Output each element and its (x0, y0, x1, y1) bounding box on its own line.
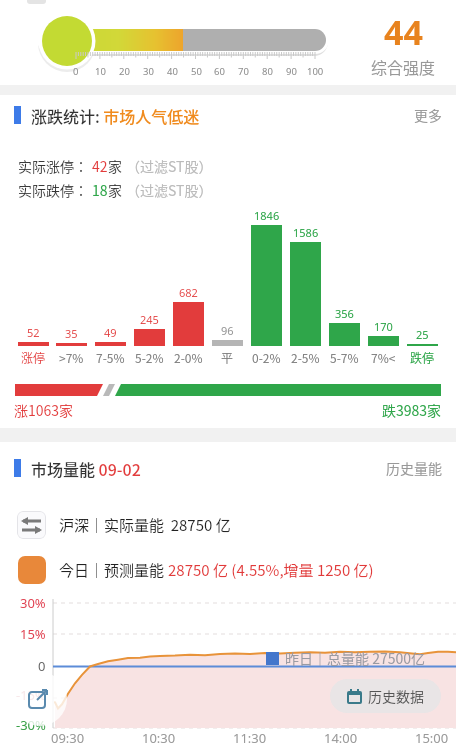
button[interactable]: 今日｜预测量能 (18, 556, 374, 584)
staticText: 10 (95, 65, 106, 78)
staticText: 2-5% (291, 349, 320, 366)
staticText: 实际涨停： (18, 156, 92, 176)
staticText: （过滤ST股） (126, 180, 213, 200)
staticText: 历史量能 (386, 458, 442, 478)
staticText: 18 (92, 180, 108, 200)
button[interactable] (13, 672, 67, 726)
staticText: 14:00 (324, 729, 358, 747)
staticText: 40 (167, 65, 178, 78)
staticText: 家 (108, 180, 126, 200)
staticText: 0 (73, 65, 79, 78)
button[interactable]: 历史数据 (330, 679, 441, 713)
staticText: 15:00 (415, 729, 449, 747)
staticText: 25 (416, 327, 429, 342)
staticText: 44 (384, 9, 423, 55)
staticText: 平 (221, 349, 234, 366)
staticText: 80 (262, 65, 273, 78)
staticText: 682 (179, 285, 198, 300)
staticText: 跌3983家 (382, 400, 442, 420)
staticText: 0-2% (252, 349, 281, 366)
staticText: 1586 (293, 225, 319, 240)
staticText: 涨1063家 (14, 400, 74, 420)
staticText: 42 (92, 156, 108, 176)
staticText: 5-2% (135, 349, 164, 366)
staticText: 市场量能 09-02 (31, 457, 141, 480)
staticText: 11:30 (233, 729, 267, 747)
button[interactable]: 更多 (414, 105, 442, 125)
staticText: 28750 亿 (4.55%,增量 1250 亿) (168, 559, 374, 581)
staticText: >7% (59, 349, 84, 366)
staticText: 综合强度 (371, 55, 436, 78)
staticText: 52 (27, 325, 40, 340)
staticText: -15% (16, 686, 46, 704)
staticText: 49 (104, 325, 117, 340)
staticText: 96 (221, 323, 234, 338)
button[interactable]: 历史量能 (386, 458, 442, 478)
staticText: 家 (108, 156, 126, 176)
staticText: 涨停 (21, 349, 46, 366)
staticText: 0 (38, 657, 46, 675)
staticText: 09:30 (51, 729, 85, 747)
staticText: 30 (143, 65, 154, 78)
staticText: 跌停 (410, 349, 435, 366)
staticText: 昨日｜总量能 27500亿 (285, 648, 425, 668)
staticText: 沪深｜实际量能 28750 亿 (59, 514, 231, 536)
staticText: 10:30 (142, 729, 176, 747)
staticText: 50 (191, 65, 202, 78)
staticText: 356 (335, 306, 354, 321)
staticText: 70 (238, 65, 249, 78)
staticText: 90 (286, 65, 297, 78)
staticText: 7-5% (96, 349, 125, 366)
staticText: 今日｜预测量能 (59, 559, 168, 581)
staticText: 30% (20, 594, 46, 612)
staticText: 35 (65, 326, 78, 341)
staticText: 涨跌统计: 市场人气低迷 (31, 104, 200, 127)
staticText: -30% (16, 716, 46, 734)
staticText: 170 (374, 319, 393, 334)
staticText: 245 (140, 312, 159, 327)
staticText: 15% (20, 625, 46, 643)
staticText: 7%< (371, 349, 396, 366)
staticText: 历史数据 (368, 686, 424, 706)
staticText: 实际跌停： (18, 180, 92, 200)
button[interactable]: 沪深｜实际量能 28750 亿 (17, 511, 231, 539)
staticText: 20 (119, 65, 130, 78)
staticText: 60 (214, 65, 225, 78)
staticText: 100 (307, 65, 324, 78)
staticText: 2-0% (174, 349, 203, 366)
staticText: 更多 (414, 105, 442, 125)
staticText: （过滤ST股） (126, 156, 213, 176)
staticText: 5-7% (330, 349, 359, 366)
staticText: 1846 (254, 208, 280, 223)
